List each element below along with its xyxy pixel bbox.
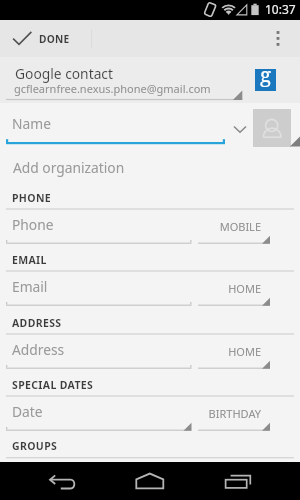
- staticText: Phone: [12, 215, 54, 234]
- staticText: Address: [12, 340, 65, 359]
- staticText: Email: [12, 277, 48, 296]
- staticText: gcflearnfree.nexus.phone@gmail.com: [14, 81, 211, 96]
- button[interactable]: Add photo: [253, 109, 291, 147]
- staticText: g: [260, 60, 272, 88]
- button[interactable]: Recent apps: [212, 462, 264, 500]
- button[interactable]: Address: [0, 340, 192, 367]
- staticText: HOME: [183, 281, 261, 296]
- button[interactable]: DONE: [0, 20, 91, 57]
- button[interactable]: Expand name fields: [229, 118, 251, 140]
- staticText: Add organization: [13, 158, 125, 177]
- button[interactable]: Date: [0, 402, 192, 429]
- staticText: SPECIAL DATES: [12, 378, 94, 392]
- button[interactable]: HOME: [196, 275, 274, 305]
- button[interactable]: Name: [0, 110, 228, 146]
- staticText: MOBILE: [183, 219, 261, 234]
- button[interactable]: Home: [124, 462, 176, 500]
- staticText: GROUPS: [12, 439, 58, 453]
- staticText: 10:37: [265, 1, 296, 17]
- staticText: BIRTHDAY: [183, 406, 261, 421]
- button[interactable]: Back: [37, 462, 89, 500]
- button[interactable]: Email: [0, 277, 192, 304]
- button[interactable]: BIRTHDAY: [196, 400, 274, 430]
- staticText: DONE: [39, 32, 70, 46]
- staticText: HOME: [183, 344, 261, 359]
- button[interactable]: HOME: [196, 338, 274, 368]
- button[interactable]: Phone: [0, 215, 192, 242]
- staticText: ADDRESS: [12, 316, 62, 330]
- button[interactable]: Google account: [255, 69, 276, 91]
- staticText: EMAIL: [12, 253, 47, 267]
- button[interactable]: MOBILE: [196, 213, 274, 243]
- staticText: PHONE: [12, 191, 52, 205]
- staticText: Google contact: [15, 64, 113, 83]
- button[interactable]: Add organization: [0, 150, 250, 180]
- staticText: Date: [12, 402, 43, 421]
- button[interactable]: Google contact: [0, 57, 247, 102]
- button[interactable]: More options: [266, 20, 292, 57]
- staticText: Name: [12, 114, 51, 133]
